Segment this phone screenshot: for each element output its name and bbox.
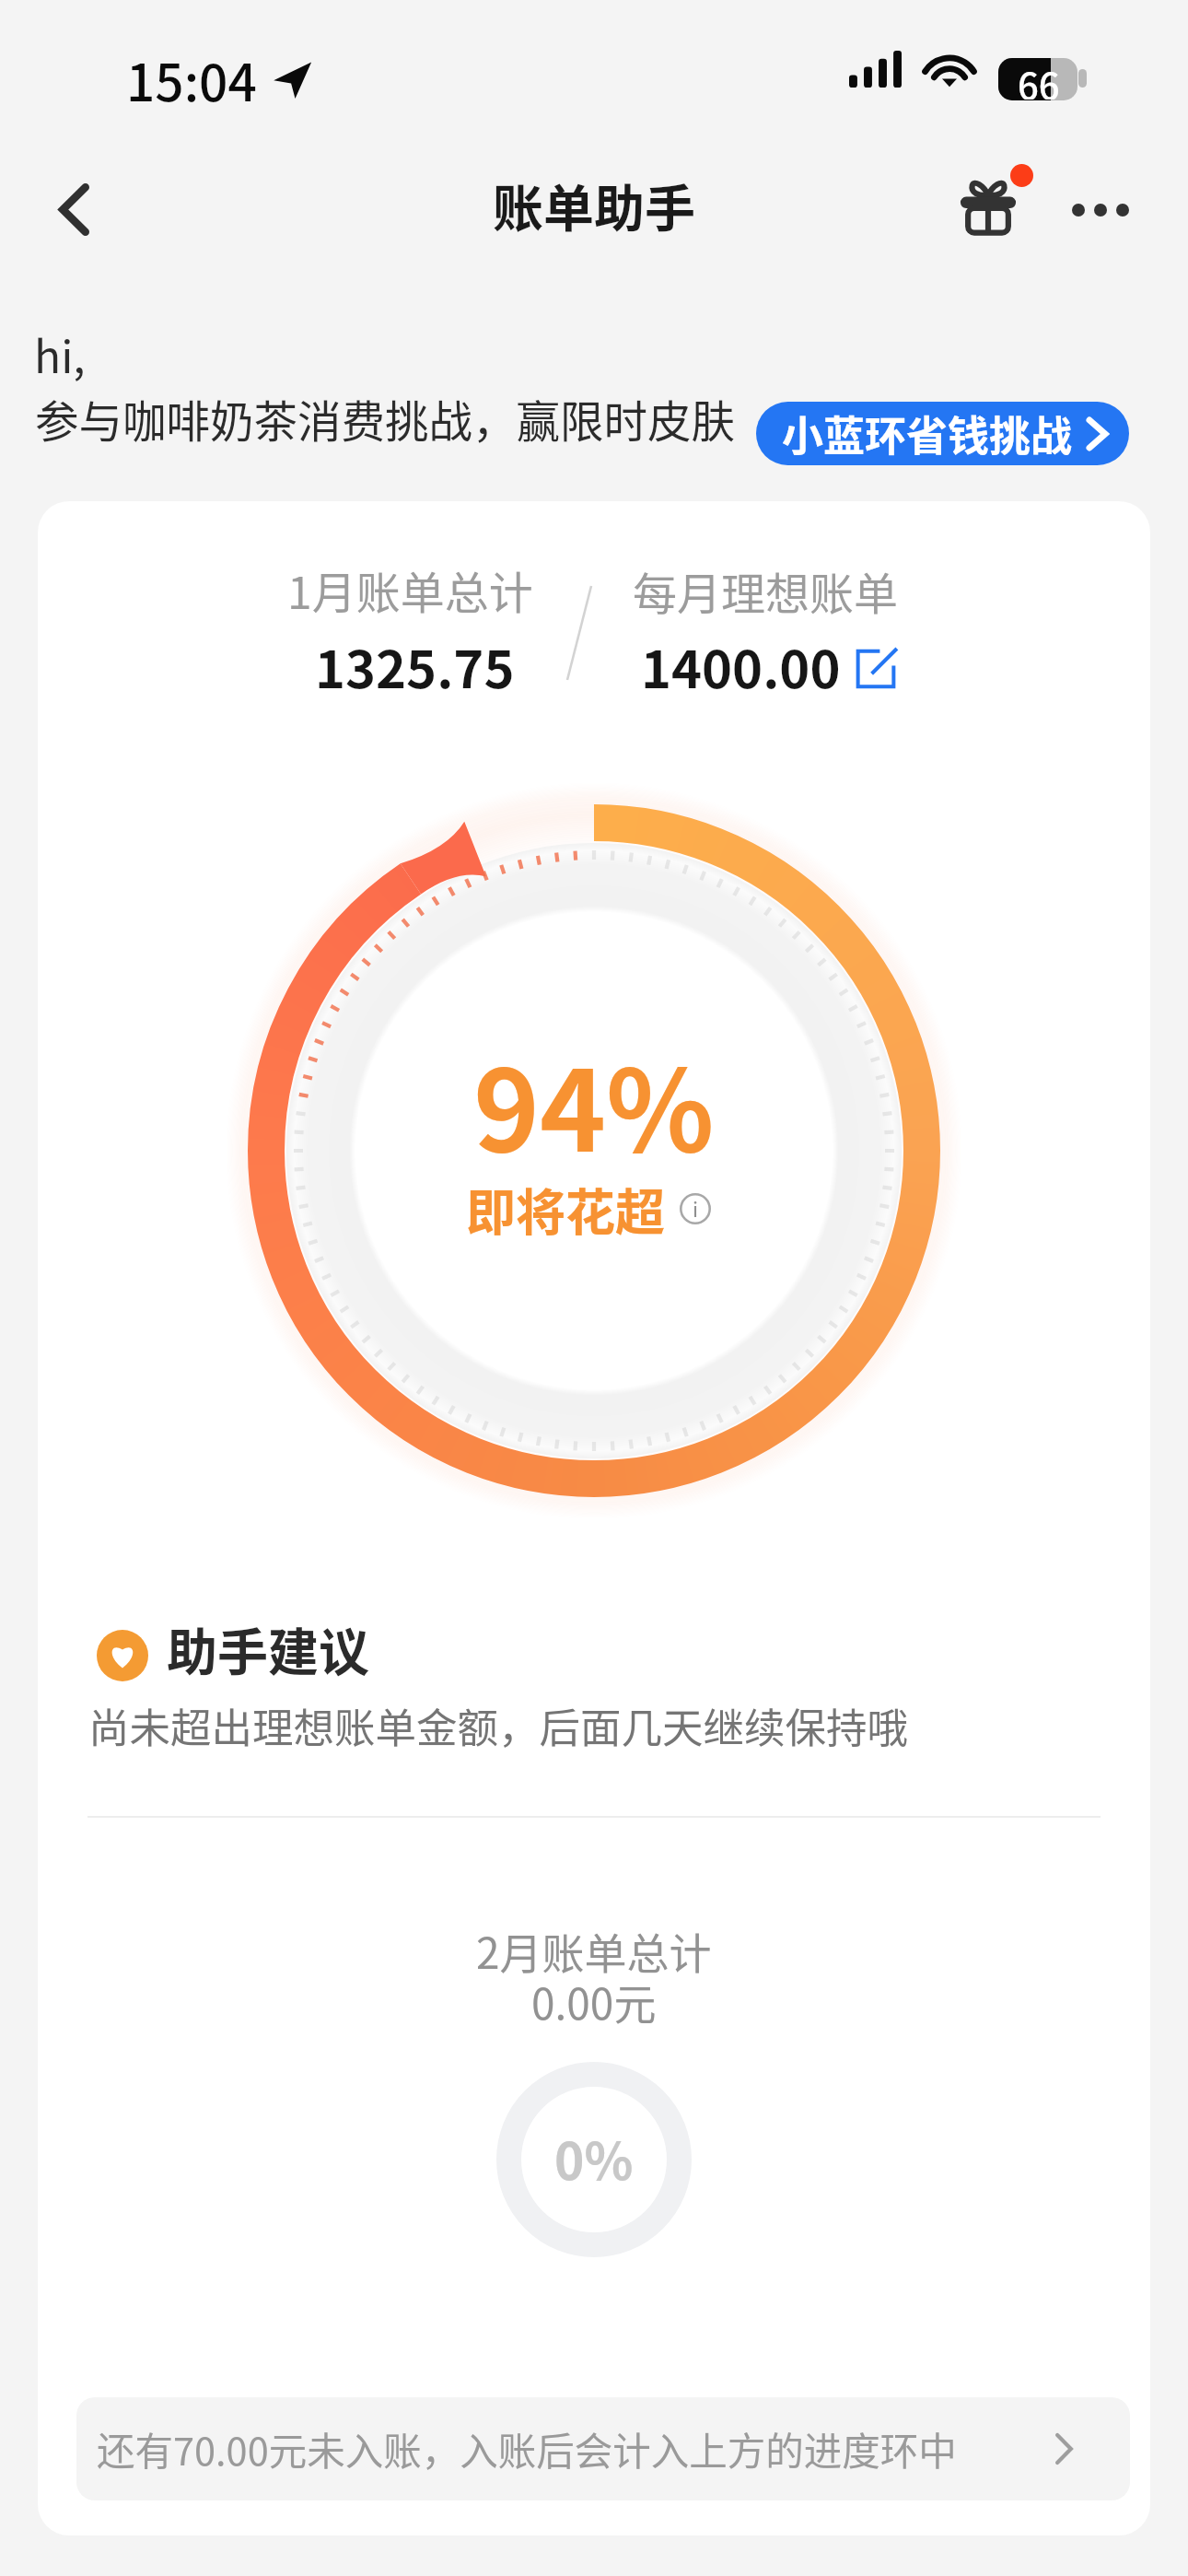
- staticText: 15:04: [126, 42, 257, 116]
- button[interactable]: 小蓝环省钱挑战: [756, 402, 1129, 465]
- staticText: 66: [1018, 58, 1060, 100]
- staticText: 还有70.00元未入账，入账后会计入上方的进度环中: [97, 2421, 957, 2476]
- button[interactable]: Back: [23, 158, 124, 260]
- staticText: 1月账单总计: [287, 557, 533, 622]
- staticText: 1325.75: [315, 628, 515, 703]
- staticText: 0.00元: [531, 1971, 657, 2032]
- staticText: 1400.00: [641, 628, 841, 703]
- staticText: 助手建议: [167, 1611, 370, 1685]
- staticText: 账单助手: [493, 168, 696, 241]
- staticText: 0%: [554, 2121, 634, 2195]
- button[interactable]: Edit ideal bill: [852, 645, 900, 693]
- button[interactable]: Gifts: [942, 152, 1036, 246]
- staticText: i: [693, 1193, 699, 1223]
- staticText: hi,: [34, 322, 86, 386]
- staticText: 即将花超: [466, 1173, 665, 1245]
- button[interactable]: 还有70.00元未入账，入账后会计入上方的进度环中: [76, 2397, 1130, 2500]
- staticText: 参与咖啡奶茶消费挑战，赢限时皮肤: [35, 387, 735, 451]
- staticText: 2月账单总计: [476, 1920, 712, 1982]
- staticText: 小蓝环省钱挑战: [782, 404, 1073, 463]
- staticText: 94%: [473, 1021, 715, 1184]
- button[interactable]: More options: [1050, 159, 1151, 261]
- staticText: 每月理想账单: [633, 558, 899, 623]
- staticText: 尚未超出理想账单金额，后面几天继续保持哦: [88, 1695, 909, 1754]
